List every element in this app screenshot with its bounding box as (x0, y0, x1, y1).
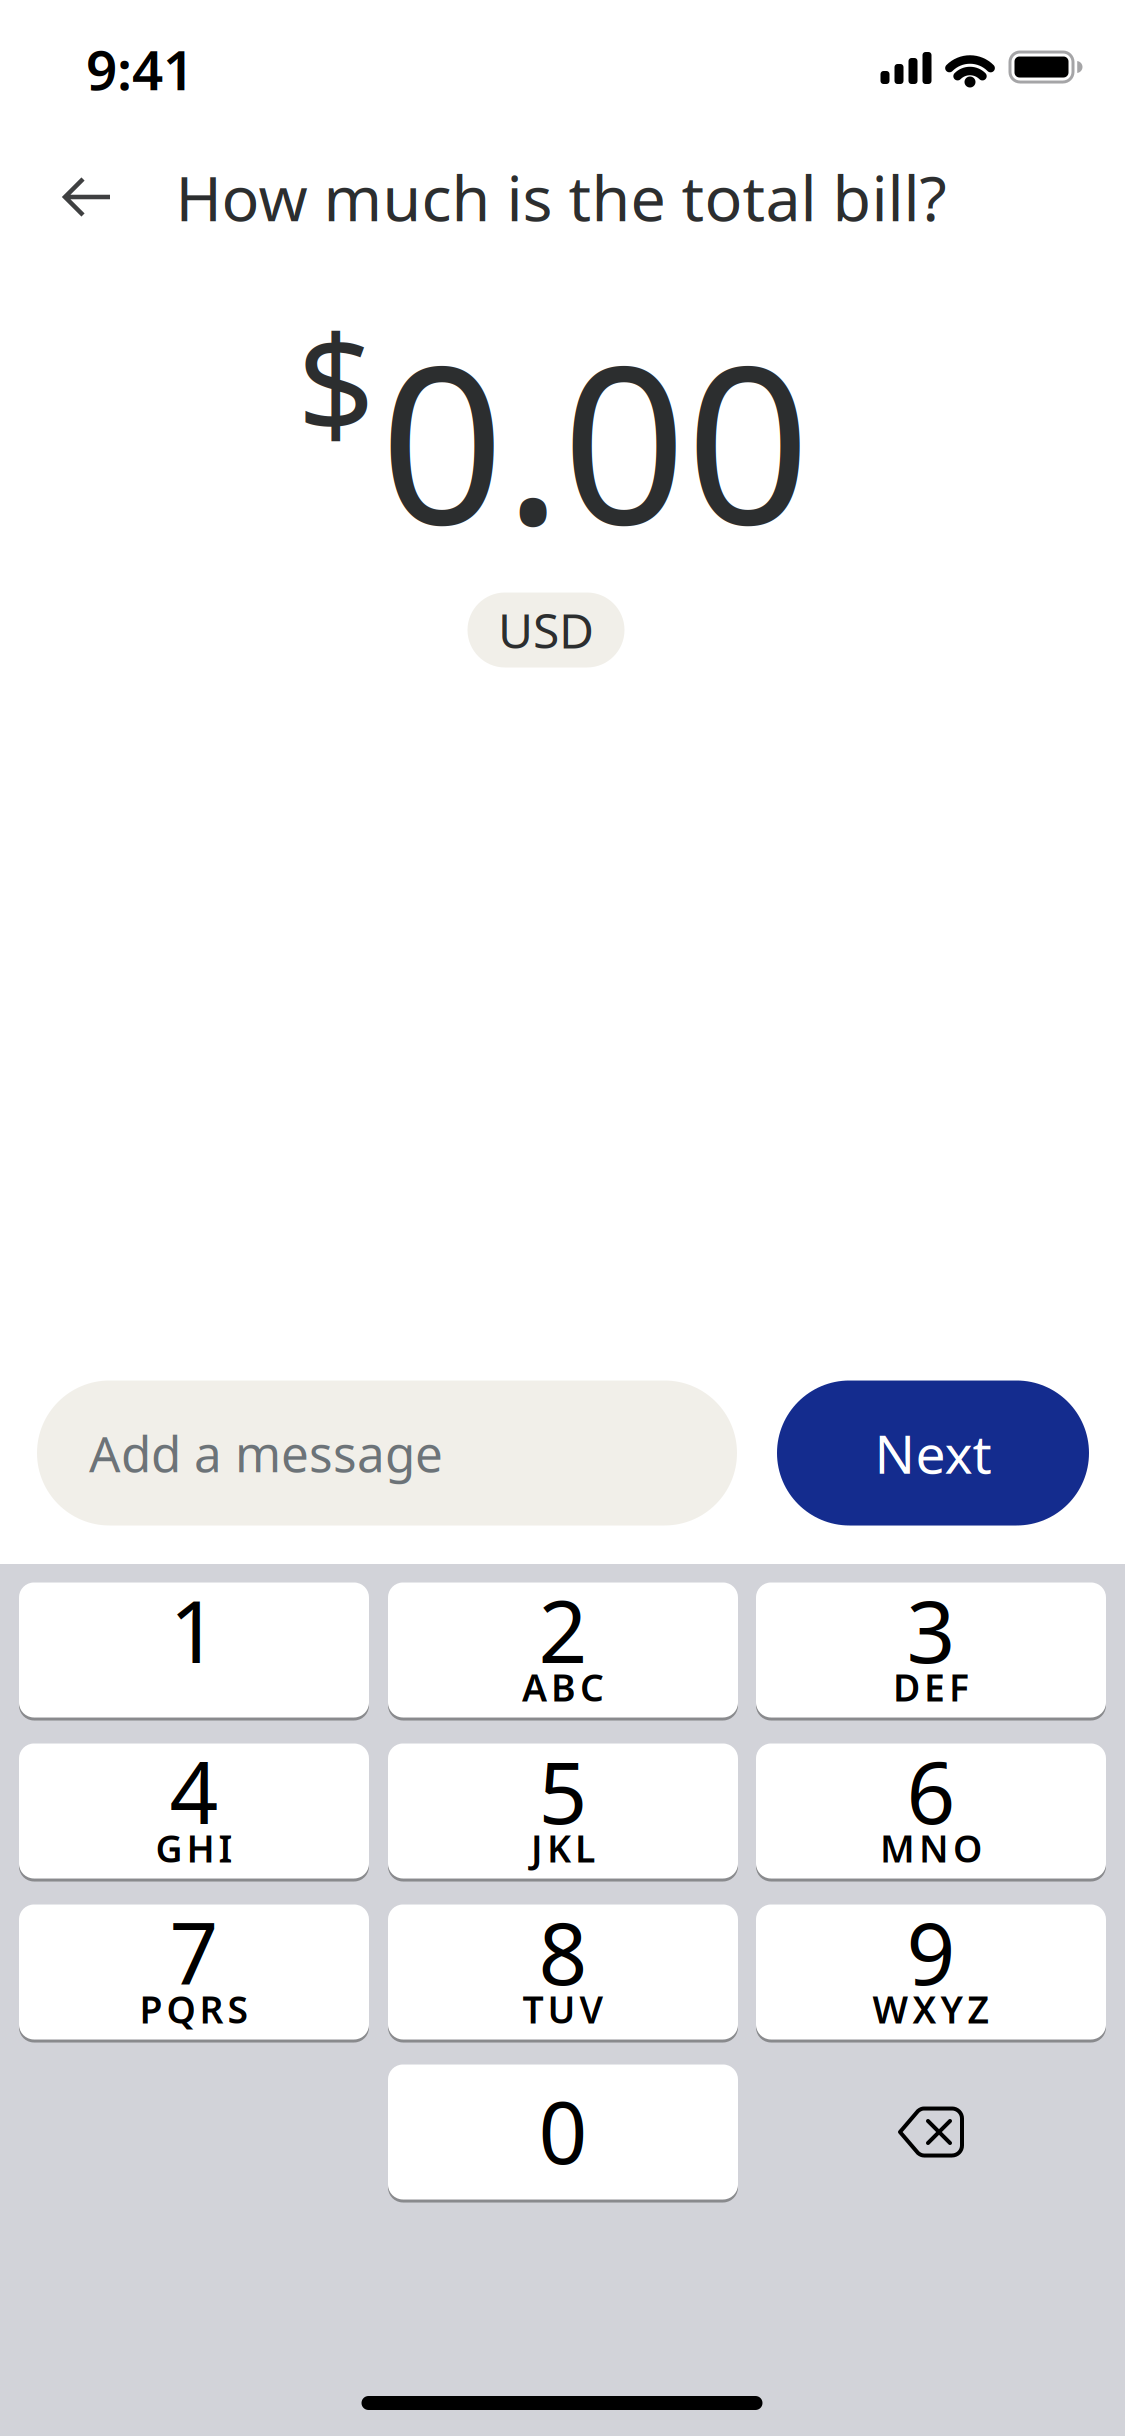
button[interactable]: 7 (19, 1902, 369, 2042)
staticText: 7 (169, 1895, 218, 2009)
button[interactable]: USD (467, 592, 624, 667)
button[interactable]: 4 (19, 1741, 369, 1881)
staticText: 2 (538, 1573, 587, 1687)
staticText: USD (498, 598, 594, 662)
button[interactable]: 5 (388, 1741, 738, 1881)
button[interactable] (756, 2062, 1106, 2202)
staticText: 6 (906, 1734, 955, 1848)
staticText: DEF (893, 1662, 969, 1712)
staticText: 3 (906, 1573, 955, 1687)
button[interactable]: 9 (756, 1902, 1106, 2042)
staticText: Next (874, 1418, 991, 1488)
button[interactable]: 0 (388, 2062, 738, 2202)
staticText: 0 (538, 2074, 587, 2188)
button[interactable]: 8 (388, 1902, 738, 2042)
staticText: ABC (522, 1662, 604, 1712)
staticText: 1 (169, 1573, 218, 1687)
button[interactable]: 2 (388, 1580, 738, 1720)
staticText: TUV (522, 1984, 603, 2034)
staticText: JKL (531, 1823, 595, 1873)
button[interactable]: Next (777, 1380, 1089, 1525)
staticText: 5 (538, 1734, 587, 1848)
staticText: $ (297, 291, 375, 471)
staticText: 0.00 (380, 296, 810, 584)
staticText: GHI (155, 1823, 232, 1873)
button[interactable]: 3 (756, 1580, 1106, 1720)
button[interactable]: 6 (756, 1741, 1106, 1881)
staticText: 9 (906, 1895, 955, 2009)
staticText: WXYZ (872, 1984, 989, 2034)
button[interactable]: 1 (19, 1580, 369, 1720)
staticText: 4 (169, 1734, 218, 1848)
staticText: MNO (880, 1823, 982, 1873)
staticText: Add a message (89, 1420, 443, 1486)
staticText: PQRS (139, 1984, 248, 2034)
button[interactable]: Add a message (37, 1380, 737, 1525)
staticText: How much is the total bill? (175, 155, 946, 239)
staticText: 8 (538, 1895, 587, 2009)
staticText: 9:41 (86, 33, 194, 105)
button[interactable] (36, 152, 136, 242)
